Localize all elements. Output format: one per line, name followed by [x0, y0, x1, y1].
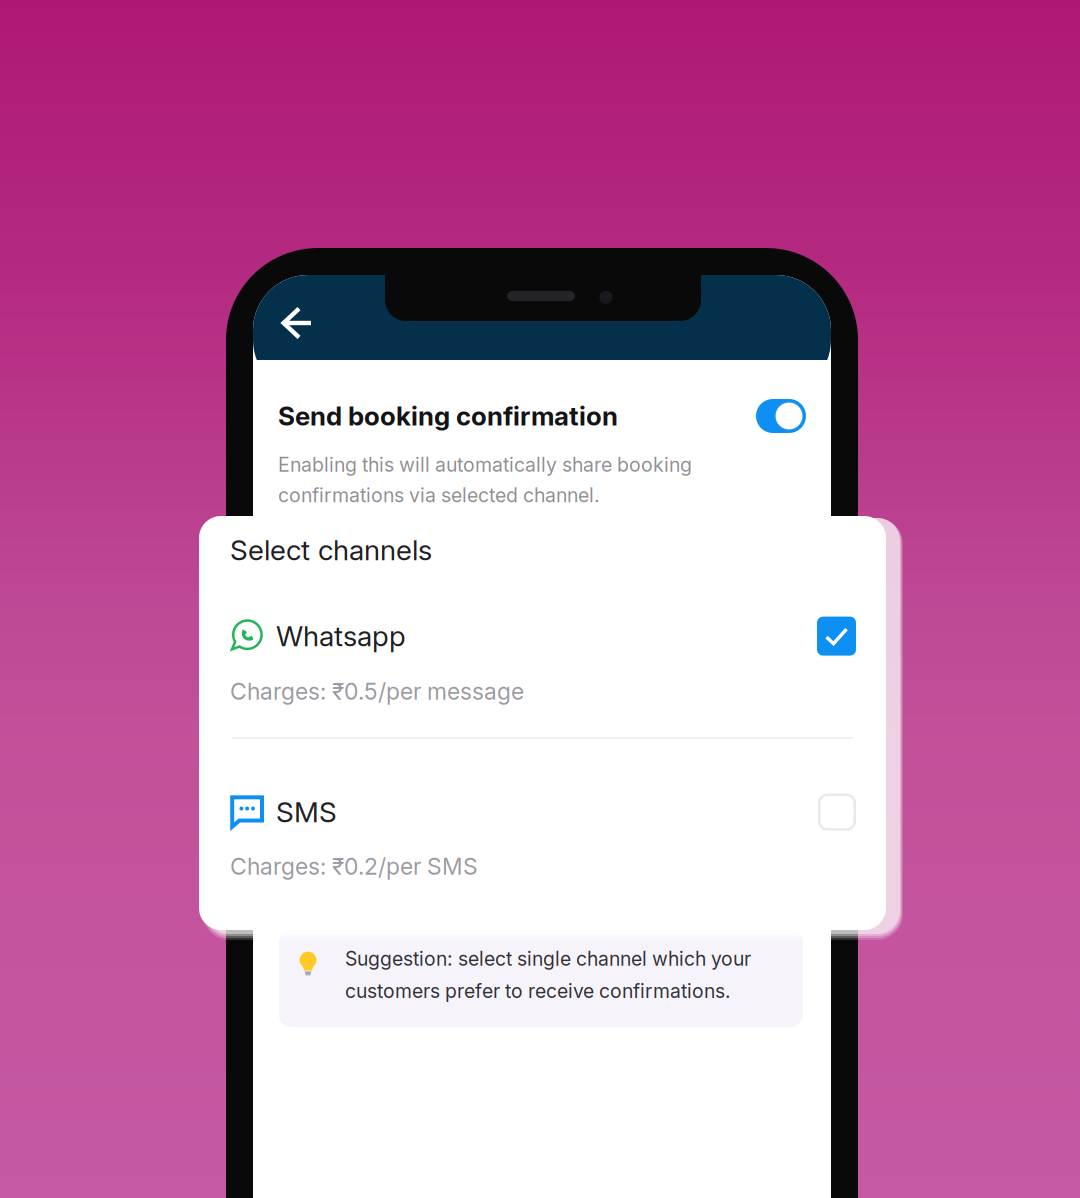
staticText: Charges: ₹0.2/per SMS [230, 853, 478, 880]
staticText: SMS [276, 795, 337, 829]
staticText: Select channels [230, 533, 432, 567]
button[interactable]: SMS [230, 794, 855, 880]
staticText: Charges: ₹0.5/per message [230, 678, 524, 705]
button[interactable]: Send booking confirmation, on [756, 399, 806, 433]
staticText: Suggestion: select single channel which … [345, 947, 751, 970]
staticText: confirmations via selected channel. [278, 483, 600, 507]
staticText: customers prefer to receive confirmation… [345, 979, 731, 1003]
button[interactable]: Back [266, 289, 328, 357]
staticText: Whatsapp [276, 619, 406, 653]
button[interactable]: Whatsapp [230, 617, 855, 705]
staticText: Enabling this will automatically share b… [278, 453, 692, 476]
staticText: Send booking confirmation [278, 400, 618, 432]
